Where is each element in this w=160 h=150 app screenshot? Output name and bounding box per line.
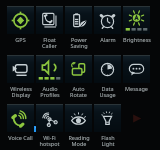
staticText: GPS	[15, 36, 26, 43]
other: Alarm	[94, 6, 121, 34]
other: Audio Profiles	[36, 55, 63, 83]
other: Voice Call	[7, 104, 34, 132]
staticText: Message	[125, 85, 148, 92]
button[interactable]: Data Usage	[93, 55, 122, 98]
staticText: Alarm	[100, 36, 116, 43]
staticText: Wireless Display	[10, 85, 32, 98]
button[interactable]: Flash Light	[93, 104, 122, 147]
staticText: Data Usage	[99, 85, 116, 98]
button[interactable]: Auto Rotate	[64, 55, 93, 98]
other: Wi-Fi hotspot	[36, 104, 63, 132]
staticText: Auto Rotate	[70, 85, 87, 98]
button[interactable]	[122, 104, 151, 141]
other: Auto Rotate	[65, 55, 92, 83]
staticText: Power Saving	[70, 36, 88, 49]
other: Flash Light	[94, 104, 121, 132]
staticText: Brightness	[123, 36, 151, 43]
button[interactable]: GPS	[6, 6, 35, 43]
staticText: Flash Light	[101, 134, 115, 147]
other: Message	[123, 55, 150, 83]
staticText: Audio Profiles	[40, 85, 60, 98]
staticText: Voice Call	[8, 134, 33, 141]
other: Power Saving	[65, 6, 92, 34]
other: Float Caller	[36, 6, 63, 34]
other: Wireless Display	[7, 55, 34, 83]
button[interactable]: Audio Profiles	[35, 55, 64, 98]
button[interactable]: Voice Call	[6, 104, 35, 141]
button[interactable]: Wi-Fi hotspot	[35, 104, 64, 147]
button[interactable]: Message	[122, 55, 151, 92]
staticText: 1	[35, 126, 38, 132]
button[interactable]: Float Caller	[35, 6, 64, 49]
other: GPS	[7, 6, 34, 34]
staticText: Wi-Fi hotspot	[39, 134, 60, 147]
staticText: Reading Mode	[68, 134, 90, 147]
staticText: Float Caller	[42, 36, 57, 49]
button[interactable]: Alarm	[93, 6, 122, 43]
other: Reading Mode	[65, 104, 92, 132]
button[interactable]: Reading Mode	[64, 104, 93, 147]
button[interactable]: Power Saving	[64, 6, 93, 49]
other: Brightness	[123, 6, 150, 34]
other	[123, 104, 150, 132]
button[interactable]: Brightness	[122, 6, 151, 43]
other: Data Usage	[94, 55, 121, 83]
button[interactable]: Wireless Display	[6, 55, 35, 98]
